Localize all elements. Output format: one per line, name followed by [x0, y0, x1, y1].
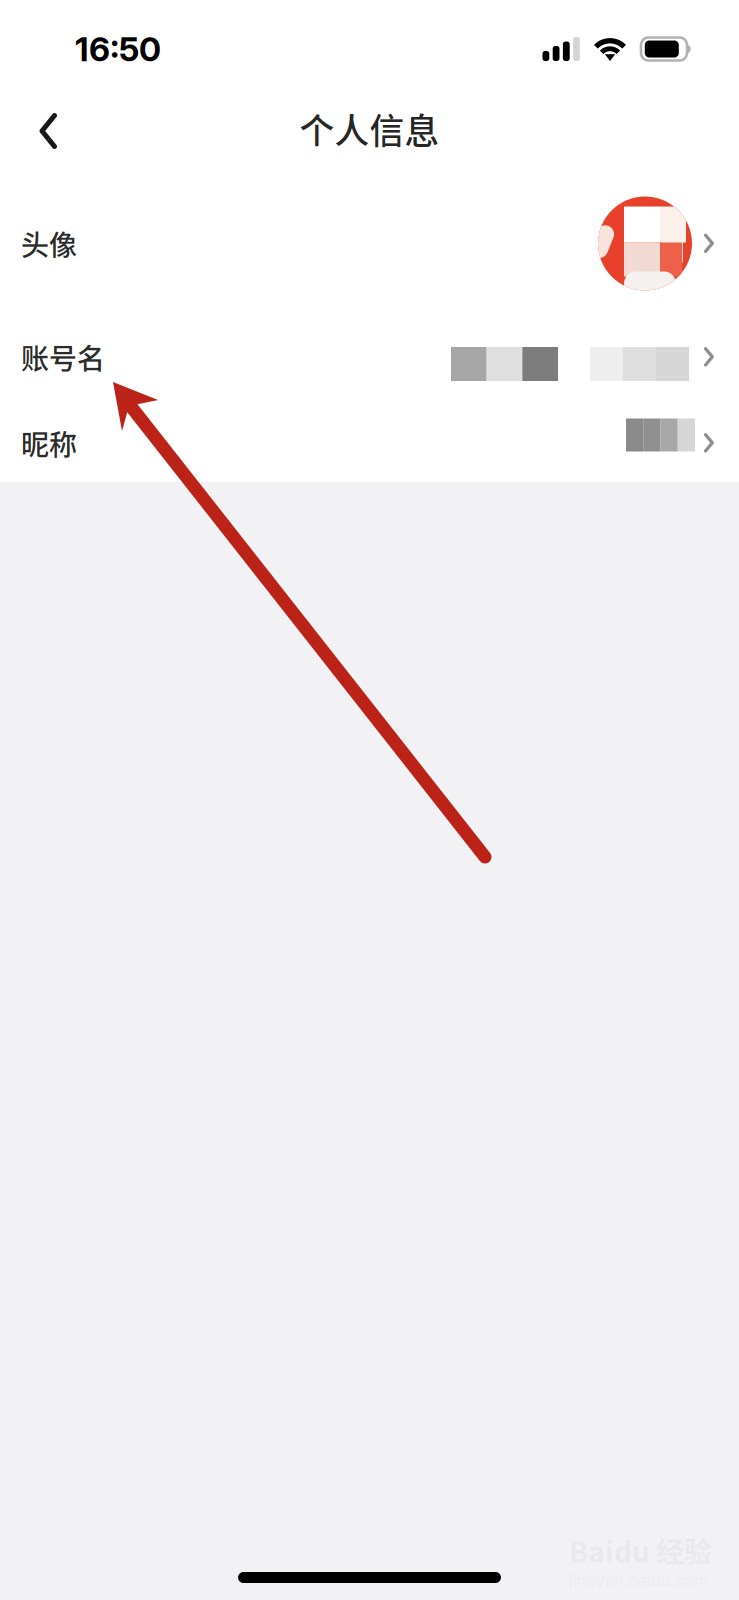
- button[interactable]: 账号名: [0, 307, 739, 407]
- staticText: 账号名: [21, 337, 105, 377]
- staticText: 个人信息: [299, 104, 439, 154]
- button[interactable]: 头像: [0, 180, 739, 307]
- button[interactable]: 昵称: [0, 407, 739, 479]
- staticText: Baidu 经验: [569, 1530, 712, 1570]
- button[interactable]: 返回: [15, 98, 81, 164]
- staticText: 16:50: [75, 29, 161, 69]
- staticText: 昵称: [21, 423, 77, 463]
- staticText: 头像: [21, 223, 77, 264]
